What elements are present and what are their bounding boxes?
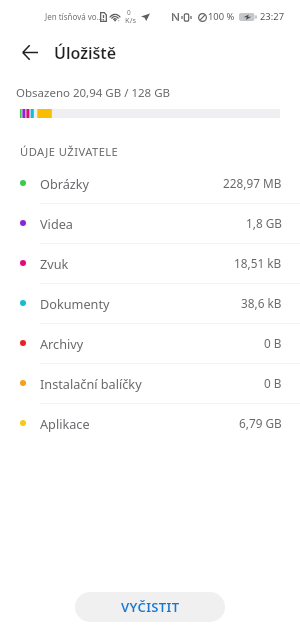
staticText: Obsazeno 20,94 GB / 128 GB (16, 85, 171, 101)
button[interactable]: Instalační balíčky (0, 363, 300, 403)
staticText: Videa (40, 215, 73, 232)
staticText: Archivy (40, 335, 84, 352)
staticText: ÚDAJE UŽIVATELE (20, 144, 119, 159)
staticText: 23:27 (260, 10, 285, 23)
staticText: 228,97 MB (223, 175, 282, 191)
staticText: Instalační balíčky (40, 375, 142, 392)
button[interactable]: Obrázky (0, 163, 300, 203)
staticText: K/s (125, 15, 137, 25)
button[interactable]: Videa (0, 203, 300, 243)
button[interactable]: Aplikace (0, 403, 300, 443)
staticText: VYČISTIT (121, 598, 180, 616)
staticText: 6,79 GB (239, 415, 282, 431)
staticText: 100 % (208, 10, 235, 23)
staticText: Dokumenty (40, 295, 110, 312)
button[interactable]: Back (10, 32, 50, 72)
staticText: 1,8 GB (246, 215, 282, 231)
staticText: 18,51 kB (234, 255, 282, 271)
staticText: 0 (127, 8, 131, 17)
staticText: Obrázky (40, 175, 90, 192)
button[interactable]: Dokumenty (0, 283, 300, 323)
button[interactable]: Zvuk (0, 243, 300, 283)
button[interactable]: VYČISTIT (75, 592, 225, 622)
staticText: Zvuk (40, 255, 69, 272)
staticText: Úložiště (54, 42, 117, 64)
staticText: Aplikace (40, 415, 90, 432)
staticText: 0 B (264, 375, 282, 391)
button[interactable]: Archivy (0, 323, 300, 363)
staticText: Jen tísňová vo... (45, 11, 104, 22)
staticText: 38,6 kB (241, 295, 282, 311)
staticText: 0 B (264, 335, 282, 351)
